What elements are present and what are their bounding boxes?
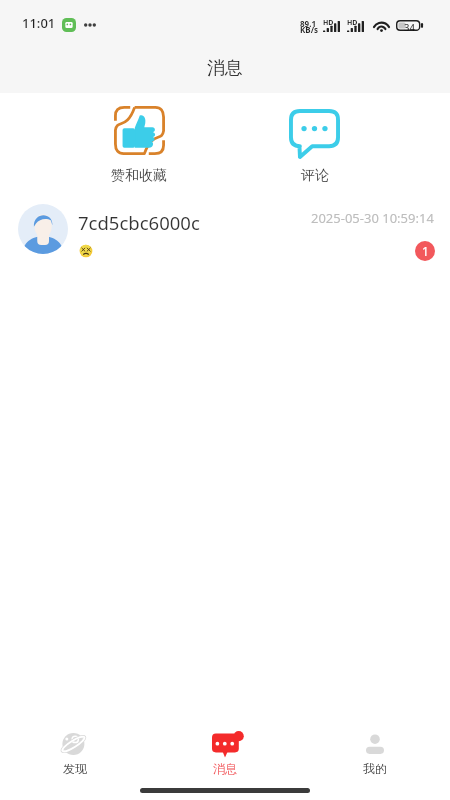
staticText: 34 xyxy=(404,21,415,32)
staticText: HD xyxy=(323,18,334,28)
button[interactable]: 7cd5cbc6000c xyxy=(0,196,450,268)
button[interactable]: Mine xyxy=(300,723,450,775)
button[interactable]: 赞和收藏 xyxy=(103,100,175,185)
button[interactable]: 评论 xyxy=(278,103,350,185)
button[interactable]: Discover xyxy=(0,723,150,775)
staticText: 我的 xyxy=(363,761,387,775)
staticText: 7cd5cbc6000c xyxy=(78,210,200,235)
staticText: 2025-05-30 10:59:14 xyxy=(311,209,434,227)
staticText: 评论 xyxy=(301,167,329,185)
staticText: 消息 xyxy=(207,57,243,80)
staticText: 赞和收藏 xyxy=(111,167,167,185)
staticText: 1 xyxy=(422,243,429,259)
staticText: 11:01 xyxy=(22,14,56,32)
staticText: KB/s xyxy=(300,24,318,35)
staticText: 发现 xyxy=(63,761,87,775)
staticText: HD xyxy=(347,18,358,28)
staticText: 89.1 xyxy=(300,18,316,29)
button[interactable]: Messages xyxy=(150,723,300,775)
staticText: 消息 xyxy=(213,761,237,775)
